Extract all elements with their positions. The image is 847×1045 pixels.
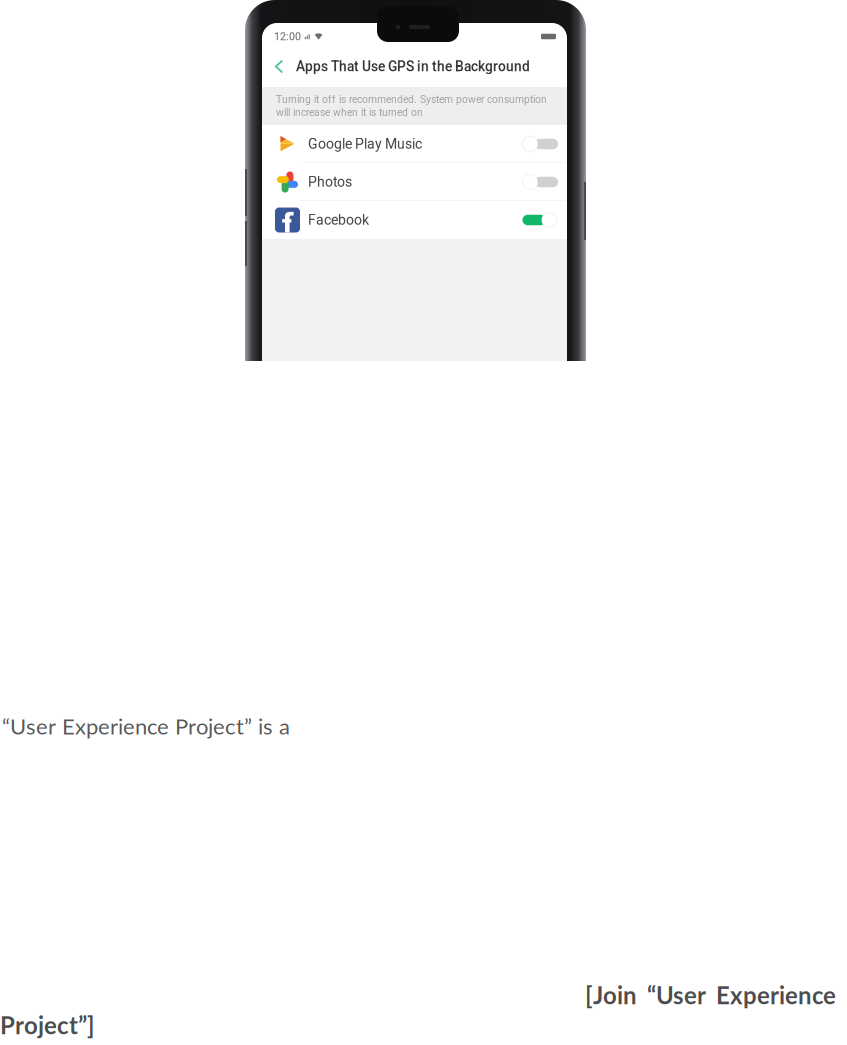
staticText: “User [647,981,706,1009]
staticText: Experience [716,981,836,1009]
button[interactable]: Back [275,55,297,81]
staticText: will increase when it is turned on [276,106,423,118]
button[interactable]: Facebook [262,201,567,239]
staticText: [Join [585,981,637,1009]
staticText: Photos [308,174,352,190]
staticText: Facebook [308,212,369,228]
staticText: Google Play Music [308,136,422,152]
button[interactable]: Photos [262,163,567,201]
staticText: 12:00 [274,30,301,43]
button[interactable]: Google Play Music [262,125,567,163]
staticText: “User Experience Project” is a [2,713,290,739]
staticText: Project”] [0,1011,95,1039]
staticText: Apps That Use GPS in the Background [296,58,530,75]
staticText: Turning it off is recommended. System po… [276,93,547,105]
